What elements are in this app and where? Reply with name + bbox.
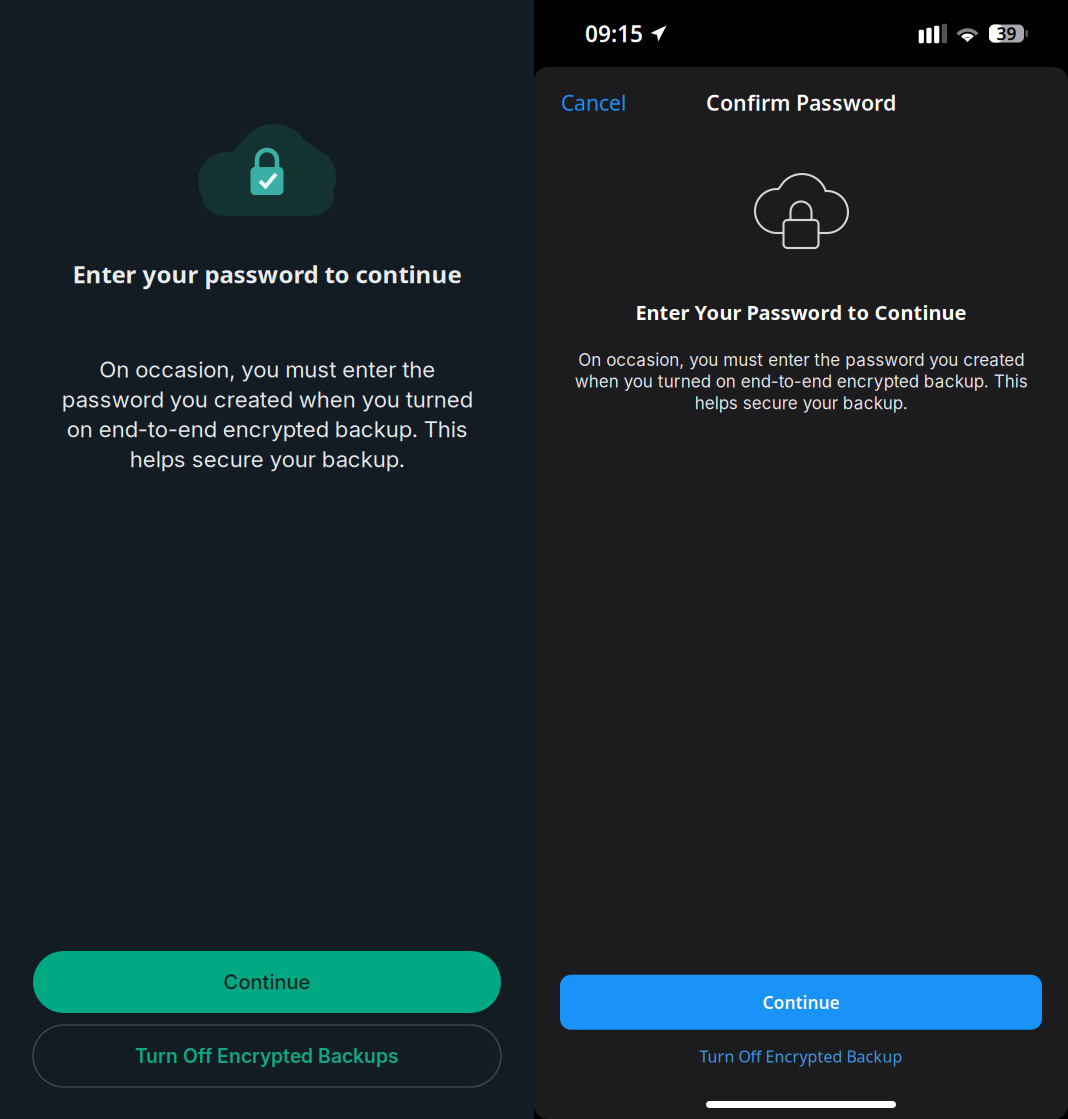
staticText: On occasion, you must enter the password…: [574, 350, 1027, 413]
button[interactable]: Continue: [33, 951, 501, 1013]
staticText: Enter your password to continue: [72, 258, 461, 290]
staticText: Continue: [223, 970, 310, 994]
staticText: Cancel: [561, 88, 627, 117]
button[interactable]: Cancel: [555, 82, 633, 123]
button[interactable]: Turn Off Encrypted Backup: [699, 1039, 902, 1074]
staticText: Continue: [762, 991, 839, 1014]
button[interactable]: Turn Off Encrypted Backups: [33, 1025, 501, 1087]
staticText: Turn Off Encrypted Backup: [699, 1046, 902, 1067]
staticText: 09:15: [585, 18, 643, 48]
button[interactable]: Continue: [560, 975, 1042, 1030]
staticText: On occasion, you must enter the password…: [61, 356, 472, 473]
staticText: Confirm Password: [706, 88, 896, 117]
staticText: Turn Off Encrypted Backups: [135, 1044, 399, 1068]
staticText: 39: [996, 22, 1016, 45]
staticText: Enter Your Password to Continue: [635, 299, 966, 326]
